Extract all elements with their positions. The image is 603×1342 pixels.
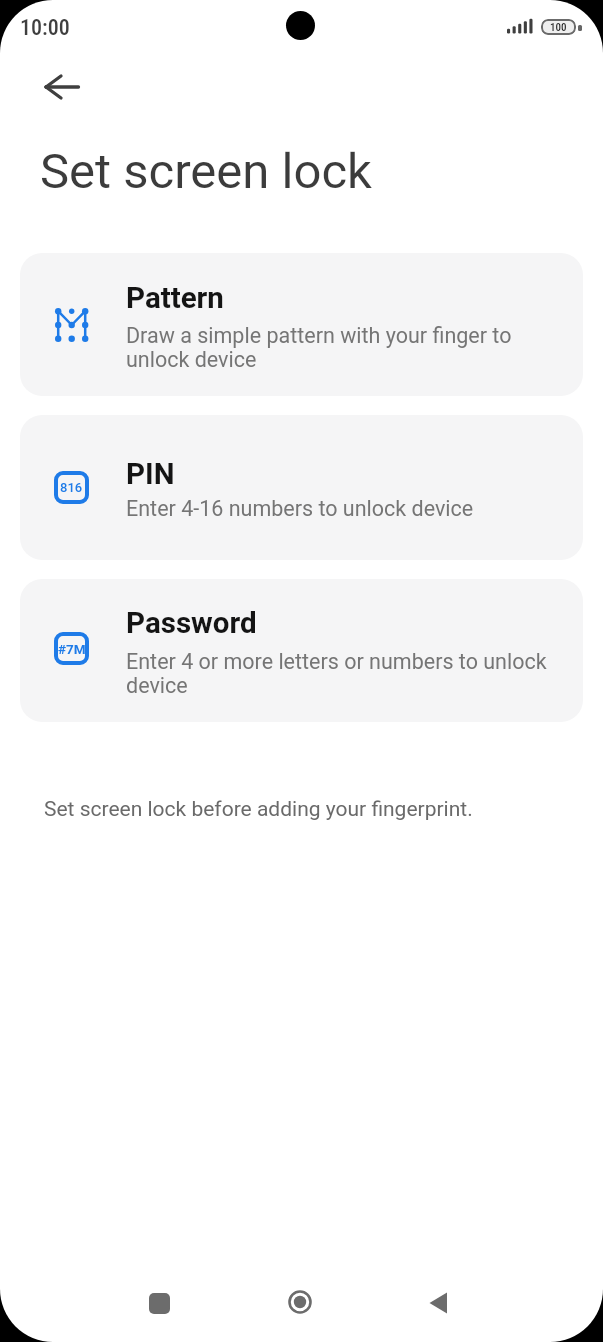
staticText: 816 <box>60 480 83 495</box>
button[interactable] <box>135 1279 183 1327</box>
staticText: 100 <box>550 21 567 34</box>
staticText: Pattern <box>126 281 224 316</box>
button[interactable] <box>276 1278 324 1326</box>
button[interactable] <box>20 579 583 722</box>
staticText: Enter 4 or more letters or numbers to un… <box>126 649 547 698</box>
staticText: Password <box>126 606 257 641</box>
staticText: Set screen lock before adding your finge… <box>44 797 473 822</box>
staticText: Set screen lock <box>40 143 372 200</box>
button[interactable] <box>20 415 583 560</box>
staticText: Enter 4-16 numbers to unlock device <box>126 496 474 521</box>
button[interactable] <box>36 61 88 113</box>
staticText: 10:00 <box>20 15 70 41</box>
staticText: Draw a simple pattern with your finger t… <box>126 323 512 372</box>
staticText: PIN <box>126 457 175 492</box>
staticText: #7M <box>58 641 86 657</box>
button[interactable] <box>20 253 583 396</box>
button[interactable] <box>414 1279 462 1327</box>
